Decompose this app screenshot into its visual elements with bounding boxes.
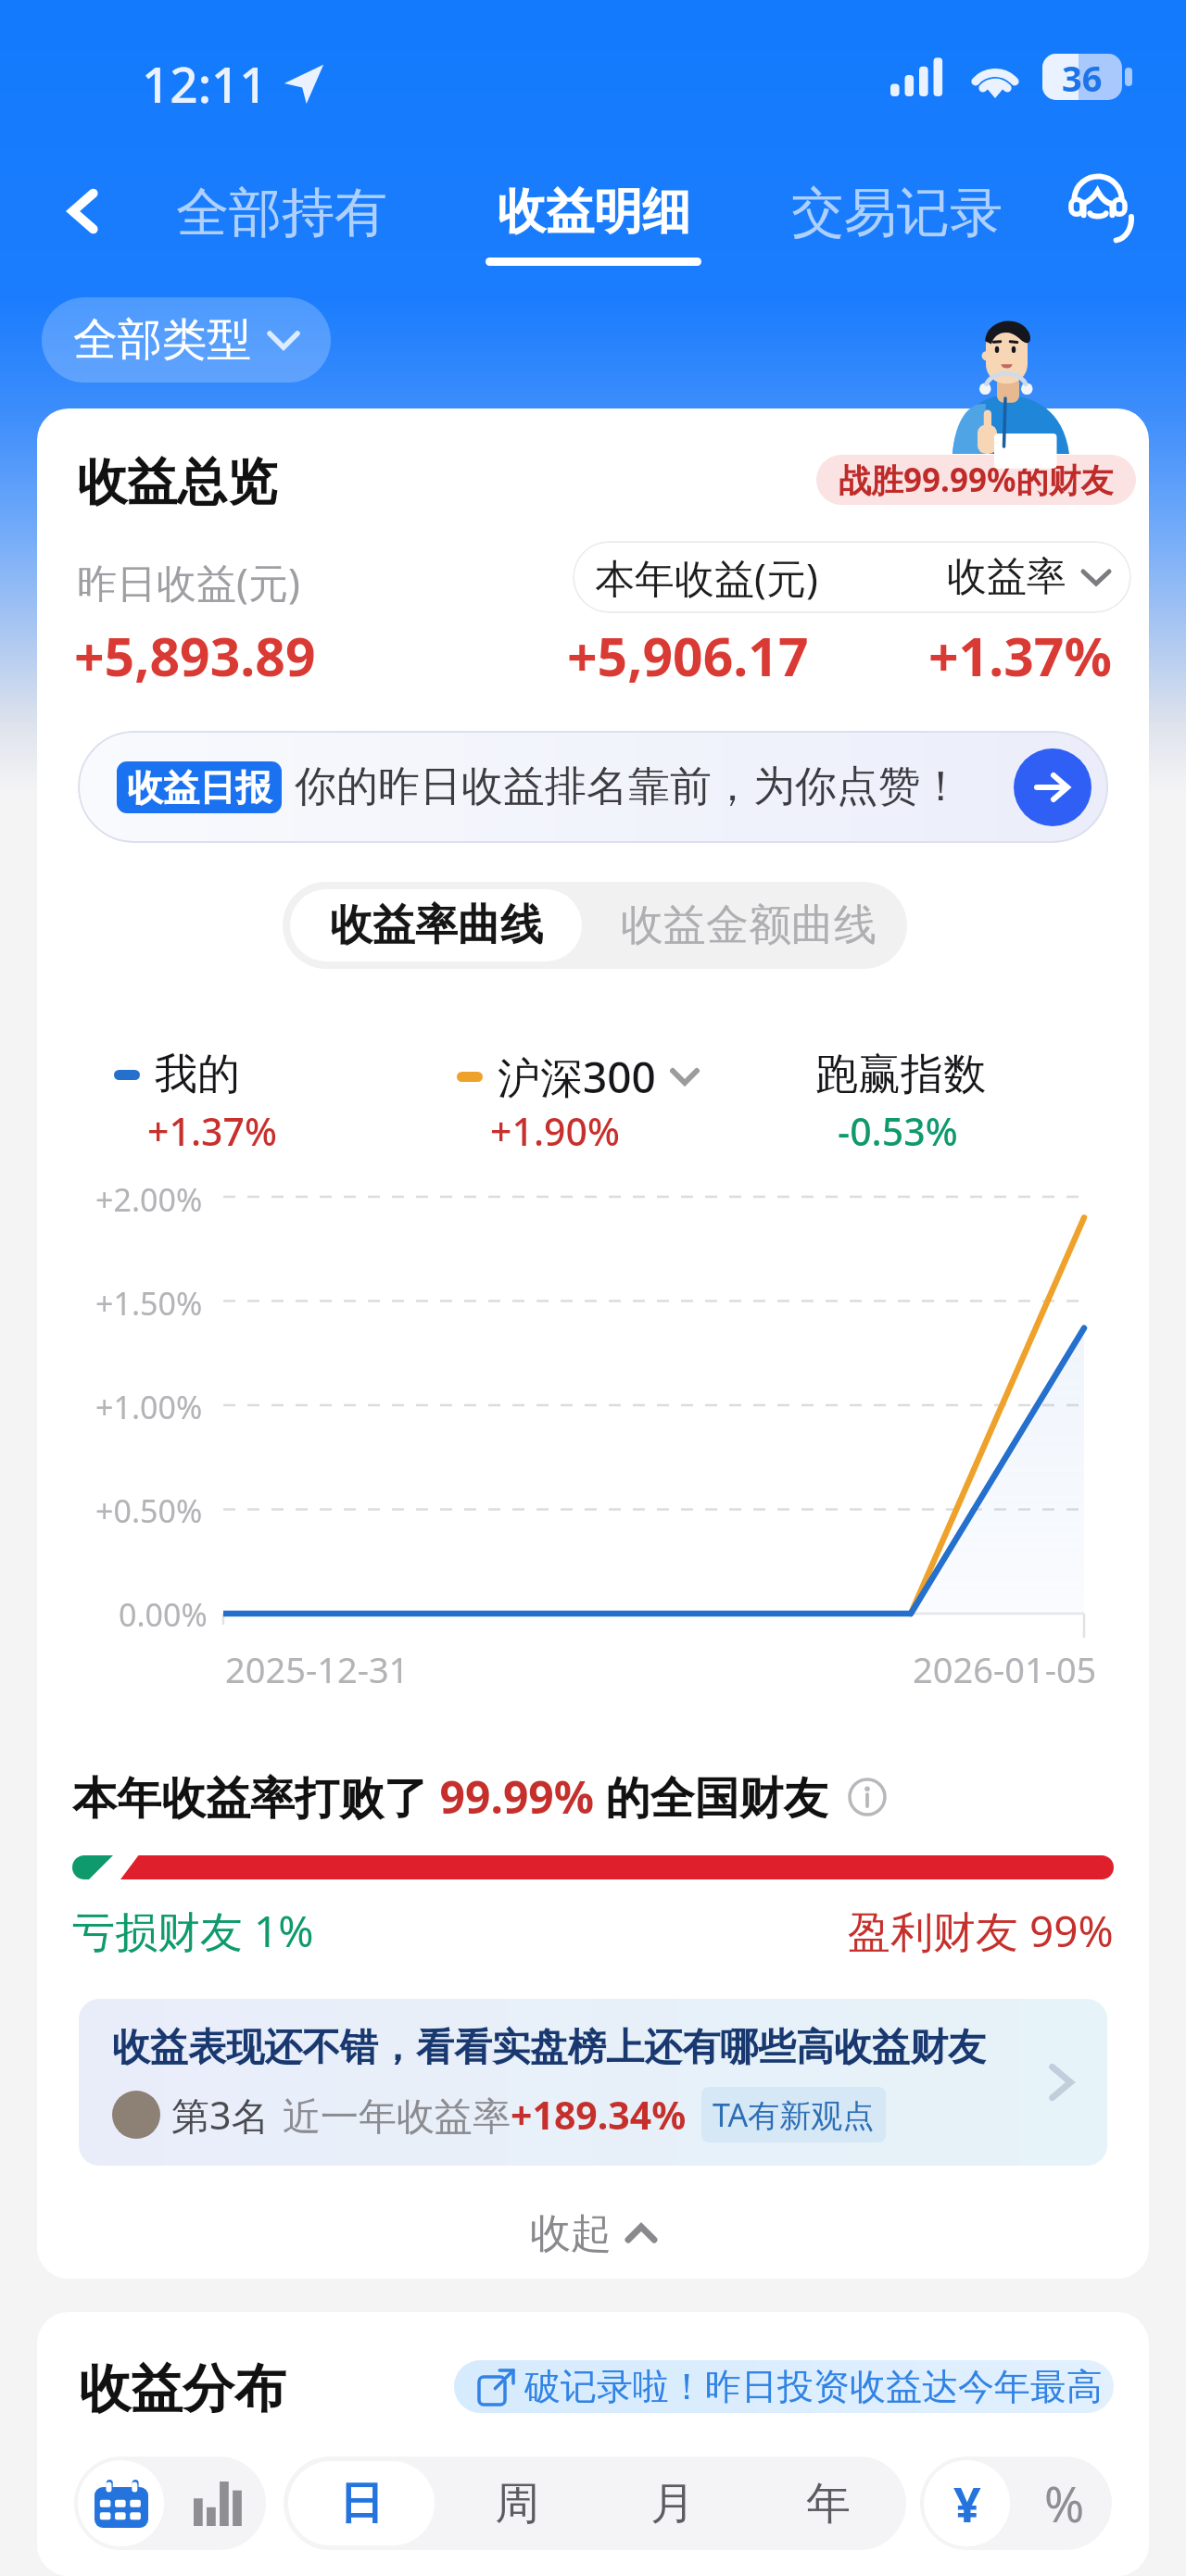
staticText: 全部持有	[176, 180, 387, 246]
staticText: 亏损财友 1%	[72, 1902, 314, 1960]
staticText: 2025-12-31	[225, 1645, 410, 1693]
staticText: 沪深300	[498, 1048, 656, 1106]
button[interactable]: 日	[288, 2461, 435, 2545]
staticText: 收益总览	[77, 451, 277, 514]
staticText: 12:11	[142, 50, 268, 117]
staticText: +1.37%	[928, 620, 1112, 692]
staticText: 36	[1062, 54, 1103, 100]
button[interactable]: 收起	[37, 2182, 1149, 2279]
staticText: 本年收益(元)	[595, 550, 818, 605]
button[interactable]: 柱状图	[171, 2457, 266, 2550]
staticText: 2026-01-05	[913, 1645, 1097, 1693]
button[interactable]: 收益率曲线	[290, 889, 582, 961]
staticText: 第3名	[171, 2089, 270, 2141]
staticText: +1.37%	[147, 1105, 277, 1157]
button[interactable]: 金额	[924, 2460, 1010, 2546]
staticText: 你的昨日收益排名靠前，为你点赞！	[295, 760, 962, 813]
button[interactable]: 收益表现还不错，看看实盘榜上还有哪些高收益财友	[79, 1999, 1107, 2166]
staticText: +5,893.89	[74, 620, 316, 692]
staticText: 0.00%	[119, 1593, 208, 1636]
button[interactable]: 我的	[114, 1048, 240, 1101]
staticText: 盈利财友 99%	[848, 1902, 1114, 1960]
staticText: 本年收益率打败了 99.99% 的全国财友	[72, 1766, 828, 1828]
staticText: ¥	[953, 2470, 981, 2536]
button[interactable]: 收益明细	[480, 182, 707, 266]
staticText: 破记录啦！昨日投资收益达今年最高	[524, 2364, 1103, 2409]
staticText: 收益明细	[498, 182, 690, 243]
staticText: 近一年收益率+189.34%	[283, 2089, 687, 2141]
staticText: 收益率曲线	[330, 898, 543, 952]
button[interactable]: 年	[751, 2457, 906, 2550]
button[interactable]: 本年收益(元)	[573, 541, 1131, 613]
button[interactable]: 破记录啦！昨日投资收益达今年最高	[454, 2360, 1114, 2413]
staticText: +0.50%	[95, 1489, 203, 1532]
staticText: 昨日收益(元)	[77, 555, 300, 609]
staticText: 收益金额曲线	[621, 898, 877, 952]
button[interactable]: 客服	[1052, 156, 1144, 248]
button[interactable]: 百分比	[1017, 2457, 1112, 2550]
staticText: 月	[650, 2476, 695, 2532]
staticText: TA有新观点	[713, 2093, 875, 2136]
staticText: 收益表现还不错，看看实盘榜上还有哪些高收益财友	[112, 2024, 986, 2072]
button[interactable]: 交易记录	[786, 174, 1008, 252]
button[interactable]: 周	[439, 2457, 595, 2550]
staticText: 交易记录	[791, 180, 1003, 246]
staticText: +5,906.17	[567, 620, 809, 692]
staticText: +1.90%	[490, 1105, 620, 1157]
staticText: 战胜99.99%的财友	[839, 458, 1114, 502]
button[interactable]: 月	[595, 2457, 751, 2550]
button[interactable]: 收益日报	[78, 731, 1108, 843]
staticText: -0.53%	[838, 1105, 958, 1157]
staticText: 我的	[155, 1048, 240, 1101]
staticText: 收益率	[947, 552, 1066, 602]
button[interactable]: Back	[37, 165, 130, 258]
staticText: 跑赢指数	[815, 1048, 986, 1101]
button[interactable]: 说明	[847, 1777, 888, 1817]
staticText: +1.00%	[95, 1386, 203, 1428]
staticText: 年	[806, 2476, 851, 2532]
staticText: 收起	[530, 2208, 612, 2259]
staticText: 收益分布	[79, 2356, 286, 2422]
button[interactable]: 全部持有	[170, 174, 393, 252]
button[interactable]: 战胜99.99%的财友	[816, 455, 1136, 505]
button[interactable]: 沪深300	[457, 1048, 699, 1106]
button[interactable]: 日历	[78, 2460, 164, 2546]
staticText: +1.50%	[95, 1282, 203, 1325]
staticText: +2.00%	[95, 1178, 203, 1221]
button[interactable]: 全部类型	[42, 297, 331, 383]
staticText: 周	[495, 2476, 539, 2532]
staticText: 日	[339, 2476, 384, 2532]
staticText: %	[1044, 2470, 1085, 2536]
button[interactable]: 收益金额曲线	[589, 882, 907, 969]
staticText: 全部类型	[73, 312, 251, 368]
staticText: 收益日报	[127, 765, 271, 810]
